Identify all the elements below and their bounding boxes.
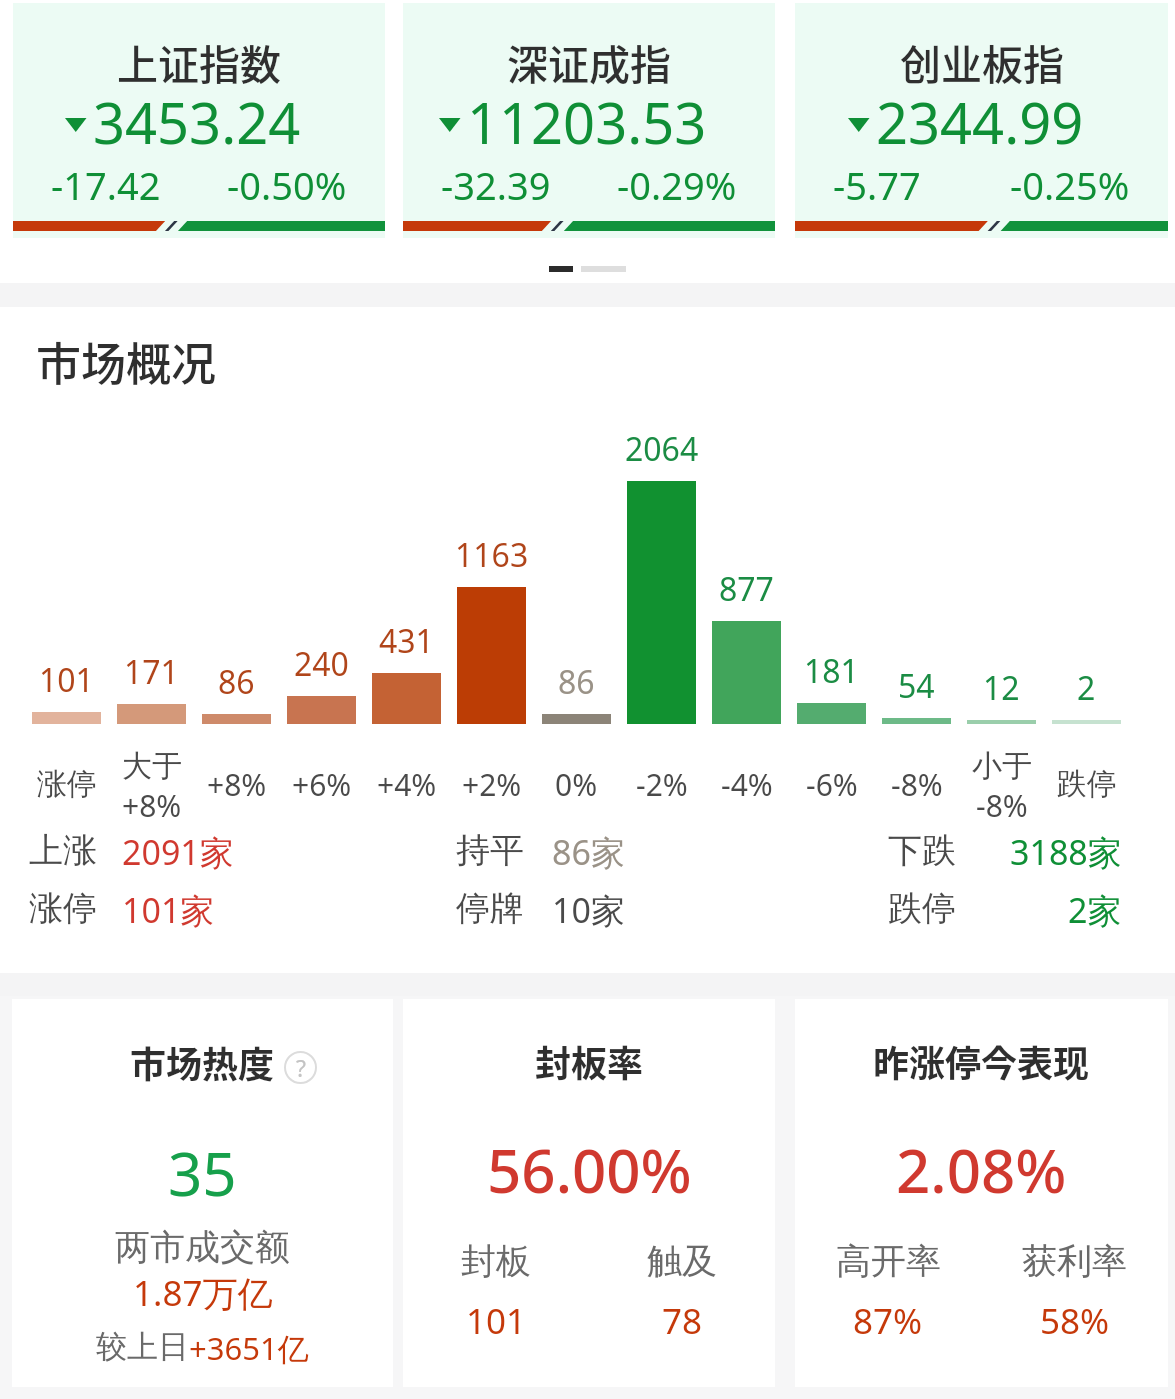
staticText: 171 [124,650,179,694]
button[interactable]: 深证成指 [403,3,775,238]
staticText: -0.25% [1010,159,1130,211]
staticText: 3453.24 [93,84,301,160]
button[interactable]: 封板率 [403,999,775,1387]
staticText: 跌停 [1057,765,1117,803]
staticText: ? [296,1052,306,1083]
staticText: 58% [1040,1297,1110,1345]
staticText: -0.50% [227,159,347,211]
staticText: 54 [898,664,935,708]
button[interactable]: 昨涨停今表现 [795,999,1168,1387]
staticText: 市场概况 [36,329,217,394]
staticText: 封板 [461,1239,531,1283]
staticText: 深证成指 [507,32,671,91]
staticText: 较上日 [96,1327,189,1366]
staticText: -6% [806,764,858,805]
staticText: +6% [292,764,352,805]
staticText: 35 [168,1132,237,1214]
staticText: 11203.53 [467,84,707,160]
staticText: 跌停 [888,887,956,930]
staticText: 触及 [647,1239,717,1283]
staticText: 封板率 [535,1035,644,1087]
staticText: -2% [636,764,688,805]
button[interactable]: 上证指数 [13,3,385,238]
staticText: 101 [39,658,94,702]
staticText: +8% [207,764,267,805]
staticText: 1163 [455,533,529,577]
staticText: 101家 [122,887,215,933]
staticText: 431 [379,619,434,663]
staticText: -8% [976,785,1028,821]
staticText: 12 [983,666,1020,710]
staticText: 56.00% [487,1129,692,1211]
staticText: -32.39 [441,159,551,211]
staticText: 下跌 [888,829,956,872]
staticText: 停牌 [456,887,524,930]
staticText: 877 [719,567,774,611]
staticText: 86 [218,660,255,704]
staticText: 上证指数 [117,32,281,91]
staticText: 87% [853,1297,923,1345]
staticText: -0.29% [617,159,737,211]
staticText: 2家 [1068,887,1122,933]
staticText: +2% [462,764,522,805]
staticText: 86 [558,660,595,704]
staticText: 1.87万亿 [133,1269,273,1317]
staticText: 上涨 [29,829,97,872]
staticText: 101 [466,1297,527,1345]
staticText: 0% [555,764,598,805]
button[interactable]: 第二页 [581,254,626,284]
staticText: 持平 [456,829,524,872]
staticText: 涨停 [37,765,97,803]
staticText: 2 [1077,666,1096,710]
staticText: -17.42 [51,159,161,211]
staticText: 2064 [625,427,699,471]
button[interactable]: 第一页 [549,254,573,284]
staticText: -5.77 [833,159,921,211]
staticText: 高开率 [836,1239,941,1283]
staticText: 2.08% [896,1129,1067,1211]
staticText: 3188家 [1010,829,1122,875]
staticText: 小于 [972,747,1032,785]
staticText: 2344.99 [876,84,1084,160]
staticText: 创业板指 [900,32,1064,91]
staticText: +4% [377,764,437,805]
staticText: 涨停 [29,887,97,930]
staticText: 获利率 [1022,1239,1127,1283]
staticText: +3651亿 [189,1327,309,1369]
button[interactable]: 帮助 [284,1051,317,1084]
button[interactable]: 创业板指 [795,3,1168,238]
staticText: 10家 [552,887,625,933]
staticText: 市场热度 [130,1036,275,1088]
button[interactable]: 市场热度 [12,999,393,1387]
staticText: 2091家 [122,829,234,875]
staticText: 昨涨停今表现 [873,1035,1090,1087]
staticText: 两市成交额 [115,1225,290,1269]
staticText: -8% [891,764,943,805]
staticText: 大于 [122,747,182,785]
staticText: -4% [721,764,773,805]
staticText: 181 [804,649,859,693]
staticText: +8% [122,785,182,821]
staticText: 240 [294,642,349,686]
staticText: 86家 [552,829,625,875]
staticText: 78 [662,1297,703,1345]
